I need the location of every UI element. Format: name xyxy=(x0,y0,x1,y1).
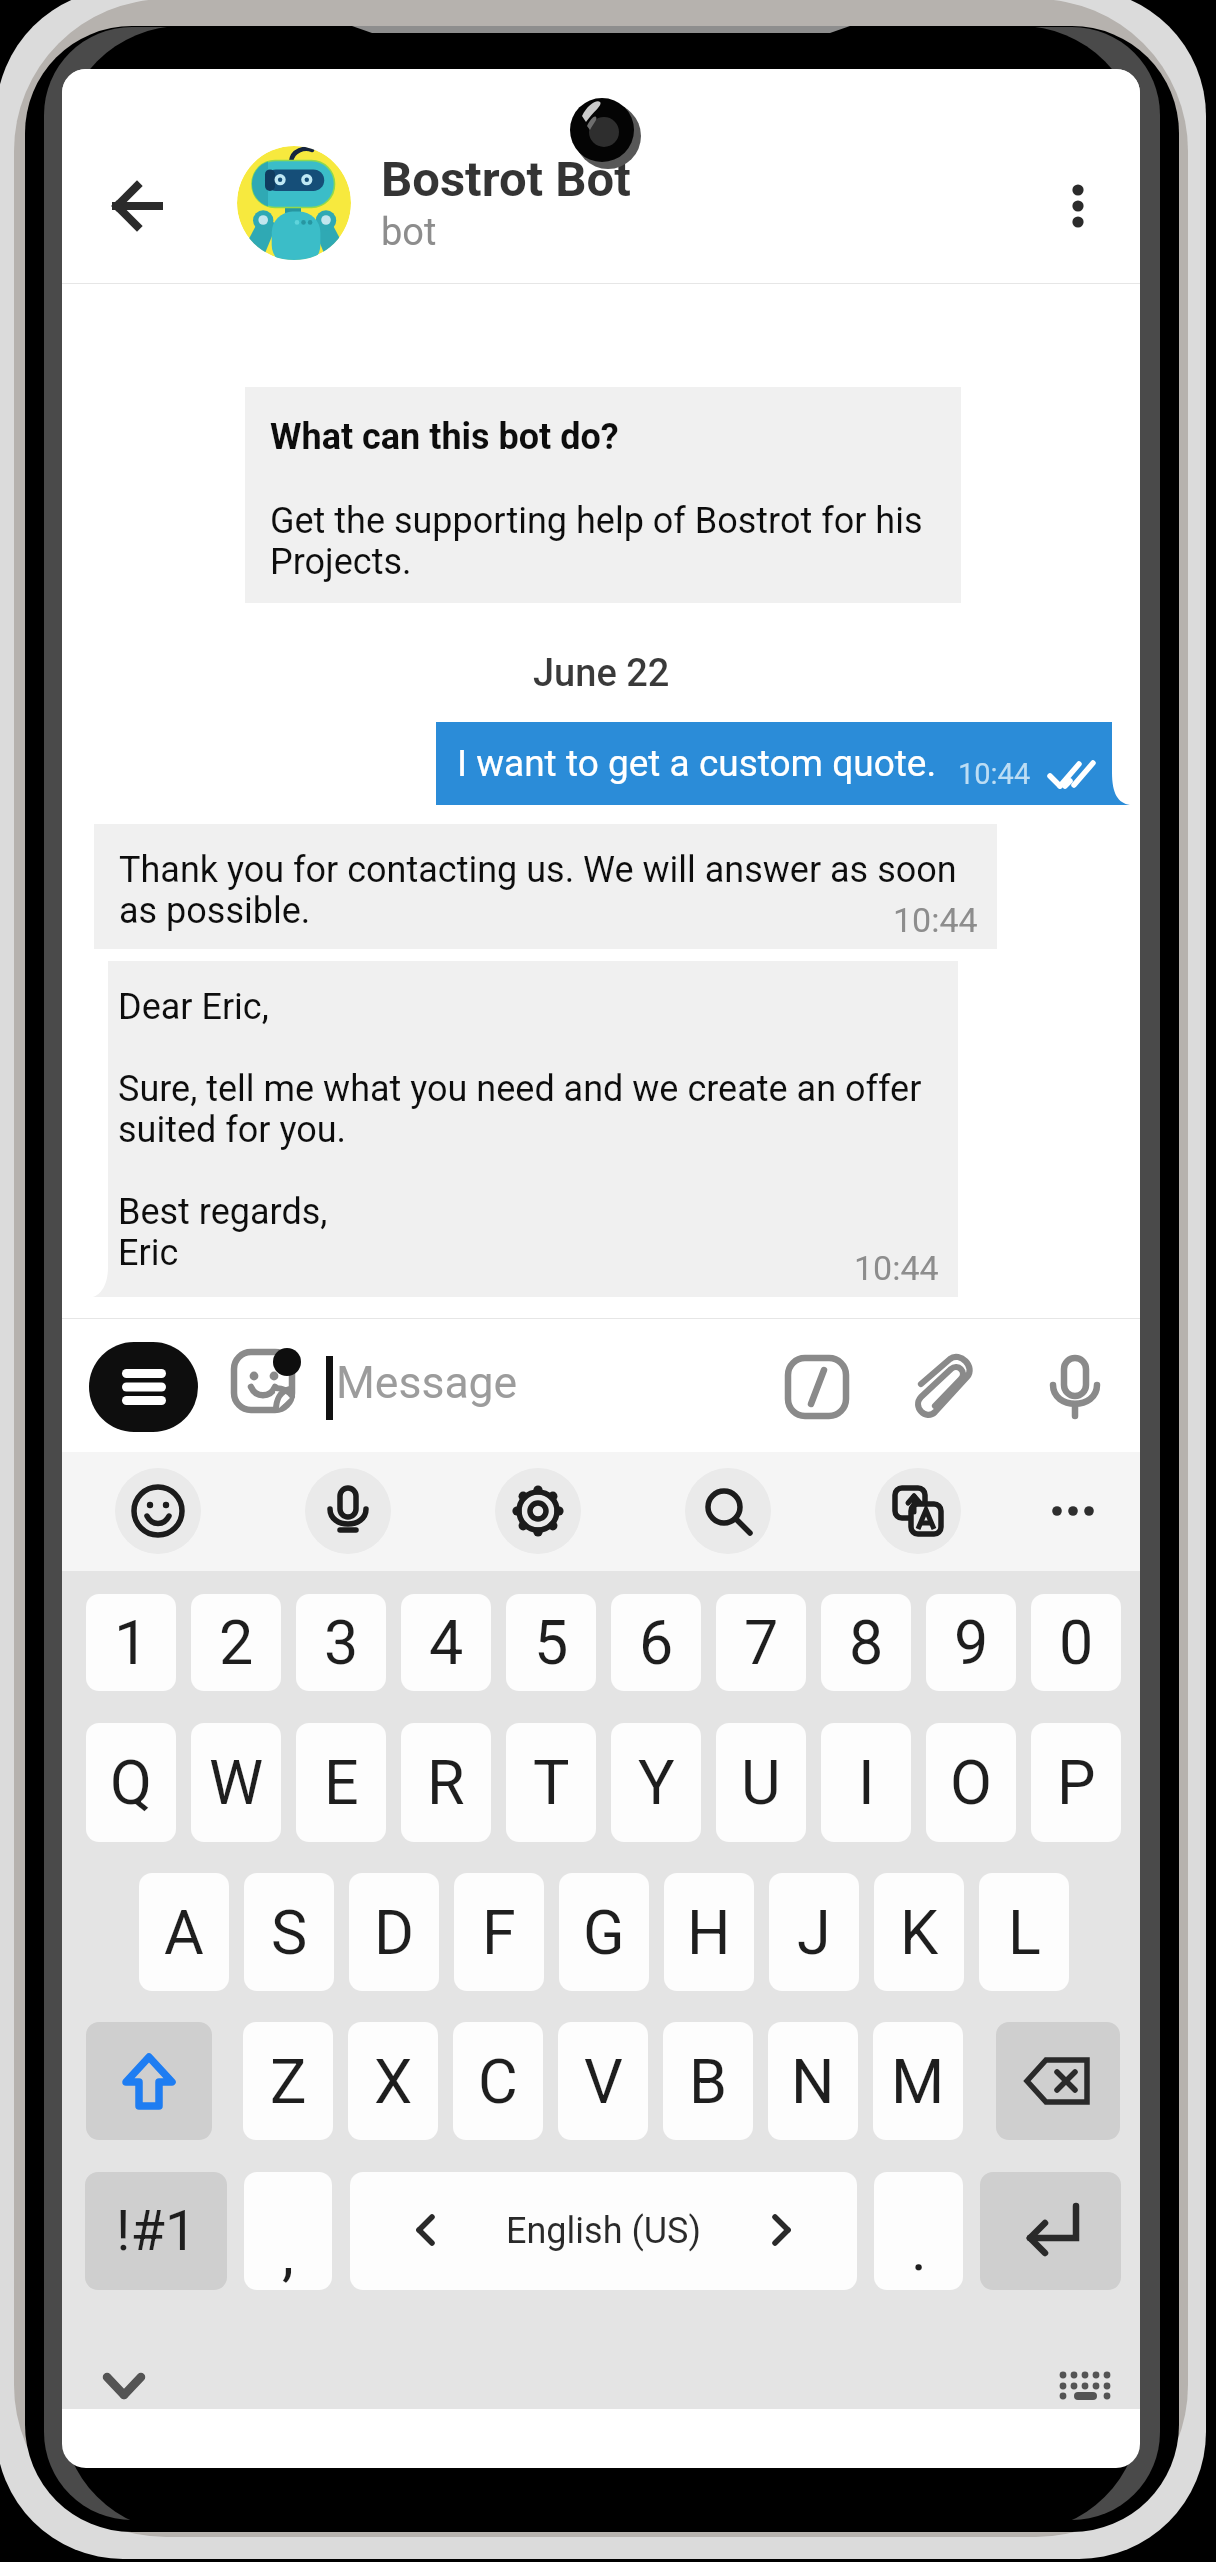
staticText: J xyxy=(797,1897,831,1968)
staticText: Z xyxy=(270,2046,307,2117)
button[interactable]: . xyxy=(874,2172,963,2290)
staticText: I want to get a custom quote. xyxy=(457,742,937,785)
button[interactable]: Translate xyxy=(875,1468,961,1554)
button[interactable]: Voice message xyxy=(1030,1342,1120,1432)
button[interactable]: X xyxy=(348,2022,438,2140)
staticText: Thank you for contacting us. We will ans… xyxy=(119,849,989,932)
button[interactable]: What can this bot do? xyxy=(245,387,961,603)
button[interactable]: Z xyxy=(243,2022,333,2140)
button[interactable]: W xyxy=(191,1723,281,1842)
staticText: Bostrot Bot xyxy=(381,151,631,208)
staticText: bot xyxy=(381,210,437,255)
button[interactable]: I want to get a custom quote. xyxy=(436,722,1112,805)
button[interactable]: Q xyxy=(86,1723,176,1842)
button[interactable]: Back xyxy=(62,69,228,284)
staticText: P xyxy=(1057,1747,1096,1818)
staticText: 10:44 xyxy=(854,1248,939,1288)
button[interactable]: Bostrot Bot xyxy=(237,121,1027,284)
button[interactable]: V xyxy=(558,2022,648,2140)
staticText: 6 xyxy=(639,1607,674,1678)
button[interactable]: 5 xyxy=(506,1594,596,1691)
button[interactable]: Space xyxy=(350,2172,857,2290)
button[interactable]: U xyxy=(716,1723,806,1842)
button[interactable]: Bot menu xyxy=(89,1342,198,1432)
button[interactable]: C xyxy=(453,2022,543,2140)
staticText: !#1 xyxy=(116,2198,197,2264)
button[interactable]: 0 xyxy=(1031,1594,1121,1691)
staticText: 7 xyxy=(744,1607,779,1678)
button[interactable]: Attach xyxy=(902,1342,992,1432)
button[interactable]: D xyxy=(349,1873,439,1991)
button[interactable]: Voice input xyxy=(305,1468,391,1554)
button[interactable]: More options xyxy=(1018,69,1138,284)
staticText: 1 xyxy=(114,1607,149,1678)
button[interactable]: Stickers xyxy=(230,1334,306,1420)
staticText: T xyxy=(533,1747,570,1818)
staticText: 10:44 xyxy=(893,900,978,940)
staticText: 9 xyxy=(954,1607,989,1678)
staticText: A xyxy=(164,1897,204,1968)
button[interactable]: Dear Eric, Sure, tell me what you need a… xyxy=(93,961,958,1297)
staticText: E xyxy=(324,1747,359,1818)
button[interactable]: 6 xyxy=(611,1594,701,1691)
button[interactable]: R xyxy=(401,1723,491,1842)
button[interactable]: Settings xyxy=(495,1468,581,1554)
button[interactable]: Emoji xyxy=(115,1468,201,1554)
button[interactable]: 2 xyxy=(191,1594,281,1691)
button[interactable]: H xyxy=(664,1873,754,1991)
button[interactable]: Shift xyxy=(86,2022,212,2140)
button[interactable]: 8 xyxy=(821,1594,911,1691)
button[interactable]: T xyxy=(506,1723,596,1842)
button[interactable]: Y xyxy=(611,1723,701,1842)
button[interactable]: N xyxy=(768,2022,858,2140)
button[interactable]: M xyxy=(873,2022,963,2140)
button[interactable]: Enter xyxy=(980,2172,1121,2290)
button[interactable]: 1 xyxy=(86,1594,176,1691)
staticText: B xyxy=(689,2046,728,2117)
button[interactable]: 9 xyxy=(926,1594,1016,1691)
button[interactable]: 4 xyxy=(401,1594,491,1691)
staticText: June 22 xyxy=(533,651,670,696)
staticText: 8 xyxy=(849,1607,884,1678)
button[interactable]: A xyxy=(139,1873,229,1991)
button[interactable]: P xyxy=(1031,1723,1121,1842)
button[interactable]: I xyxy=(821,1723,911,1842)
staticText: 10:44 xyxy=(958,757,1031,791)
button[interactable]: More xyxy=(1034,1468,1120,1554)
button[interactable]: J xyxy=(769,1873,859,1991)
button[interactable]: Search xyxy=(685,1468,771,1554)
button[interactable]: Commands xyxy=(772,1342,862,1432)
staticText: K xyxy=(900,1897,939,1968)
button[interactable]: F xyxy=(454,1873,544,1991)
button[interactable]: S xyxy=(244,1873,334,1991)
staticText: I xyxy=(858,1747,875,1818)
staticText: Dear Eric, Sure, tell me what you need a… xyxy=(118,986,948,1274)
button[interactable]: 3 xyxy=(296,1594,386,1691)
staticText: Y xyxy=(638,1747,675,1818)
staticText: L xyxy=(1008,1897,1041,1968)
button[interactable]: B xyxy=(663,2022,753,2140)
button[interactable]: Hide keyboard xyxy=(84,2351,164,2407)
button[interactable]: K xyxy=(874,1873,964,1991)
button[interactable]: G xyxy=(559,1873,649,1991)
staticText: S xyxy=(271,1897,308,1968)
staticText: X xyxy=(374,2046,413,2117)
staticText: H xyxy=(687,1897,731,1968)
button[interactable]: E xyxy=(296,1723,386,1842)
button[interactable]: Switch keyboard xyxy=(1040,2353,1112,2405)
staticText: U xyxy=(741,1747,781,1818)
staticText: 0 xyxy=(1059,1607,1094,1678)
button[interactable]: O xyxy=(926,1723,1016,1842)
staticText: V xyxy=(584,2046,623,2117)
button[interactable]: !#1 xyxy=(85,2172,227,2290)
button[interactable]: , xyxy=(244,2172,332,2290)
staticText: Q xyxy=(110,1747,152,1818)
button[interactable]: Backspace xyxy=(996,2022,1120,2140)
staticText: F xyxy=(482,1897,516,1968)
button[interactable]: L xyxy=(979,1873,1069,1991)
button[interactable]: 7 xyxy=(716,1594,806,1691)
staticText: Get the supporting help of Bostrot for h… xyxy=(270,500,946,583)
button[interactable]: Thank you for contacting us. We will ans… xyxy=(94,824,997,949)
staticText: 2 xyxy=(219,1607,254,1678)
staticText: M xyxy=(891,2046,945,2117)
